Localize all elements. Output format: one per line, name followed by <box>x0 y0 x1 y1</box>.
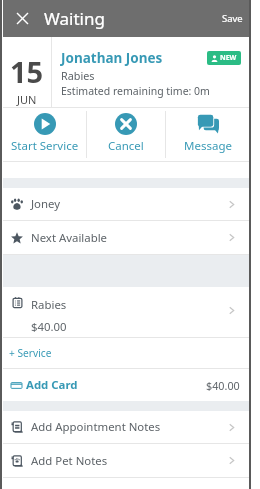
staticText: Message <box>184 138 232 154</box>
button[interactable]: Save <box>216 4 249 33</box>
staticText: Cancel <box>108 138 144 154</box>
staticText: Rabies <box>31 297 67 313</box>
staticText: Waiting <box>44 7 105 30</box>
staticText: Start Service <box>11 138 79 154</box>
staticText: Save <box>222 12 243 25</box>
button[interactable]: Message <box>166 108 249 161</box>
staticText: Estimated remaining time: 0m <box>61 84 210 98</box>
button[interactable]: Rabies <box>3 287 249 337</box>
staticText: Jonathan Jones <box>61 49 163 67</box>
button[interactable]: Close <box>7 3 38 34</box>
button[interactable]: Cancel <box>87 108 165 161</box>
button[interactable]: Add Appointment Notes <box>3 411 249 443</box>
staticText: JUN <box>17 92 37 107</box>
staticText: Joney <box>31 196 61 212</box>
button[interactable]: Joney <box>3 188 249 220</box>
staticText: 15 <box>10 52 44 91</box>
button[interactable]: NEW <box>207 51 241 65</box>
staticText: Next Available <box>31 230 108 246</box>
button[interactable]: Start Service <box>3 108 86 161</box>
staticText: $40.00 <box>31 319 67 335</box>
button[interactable]: + Service <box>3 338 249 368</box>
staticText: Add Appointment Notes <box>31 419 161 435</box>
staticText: Add Pet Notes <box>31 453 108 469</box>
staticText: Add Card <box>26 377 78 393</box>
staticText: + Service <box>9 346 52 360</box>
button[interactable]: Next Available <box>3 221 249 254</box>
button[interactable]: Add Card <box>3 369 249 401</box>
staticText: Rabies <box>61 68 95 83</box>
button[interactable]: Add Pet Notes <box>3 444 249 477</box>
staticText: NEW <box>220 53 237 63</box>
staticText: $40.00 <box>206 378 240 393</box>
